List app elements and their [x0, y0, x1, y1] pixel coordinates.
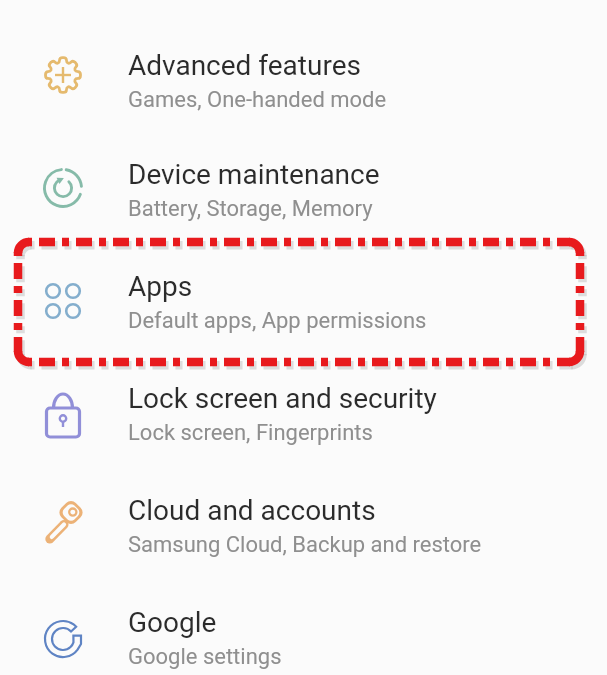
staticText: Apps: [128, 270, 193, 303]
staticText: Google: [128, 606, 217, 639]
button[interactable]: Apps: [0, 246, 607, 358]
button[interactable]: Advanced features: [0, 25, 607, 137]
staticText: Lock screen and security: [128, 382, 437, 415]
staticText: Advanced features: [128, 49, 361, 82]
staticText: Device maintenance: [128, 158, 380, 191]
staticText: Default apps, App permissions: [128, 308, 427, 334]
staticText: Cloud and accounts: [128, 494, 376, 527]
button[interactable]: Device maintenance: [0, 134, 607, 246]
staticText: Lock screen, Fingerprints: [128, 420, 373, 446]
button[interactable]: Google: [0, 582, 607, 675]
staticText: Samsung Cloud, Backup and restore: [128, 532, 482, 558]
staticText: Google settings: [128, 644, 282, 670]
staticText: Battery, Storage, Memory: [128, 196, 373, 222]
button[interactable]: Lock screen and security: [0, 358, 607, 470]
button[interactable]: Cloud and accounts: [0, 470, 607, 582]
staticText: Games, One-handed mode: [128, 87, 387, 113]
